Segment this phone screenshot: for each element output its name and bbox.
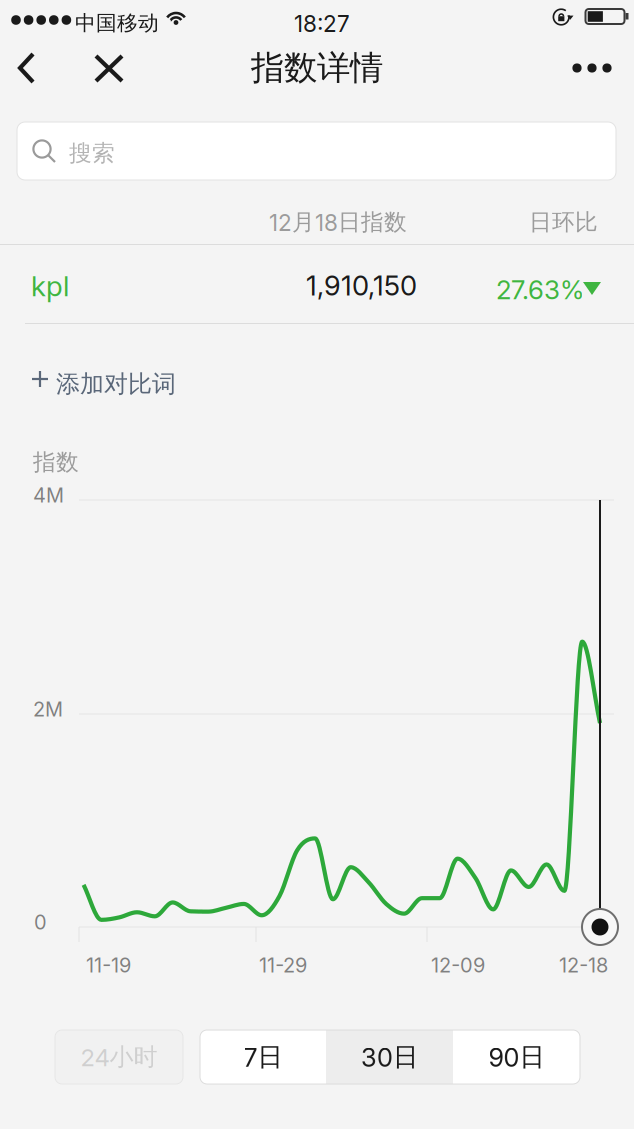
button[interactable]: 搜索 (17, 122, 616, 180)
staticText: 1,910,150 (306, 269, 417, 302)
button[interactable]: 24小时 (55, 1030, 183, 1084)
staticText: 18:27 (294, 10, 350, 37)
staticText: 12月18日指数 (269, 208, 407, 237)
staticText: 添加对比词 (56, 369, 176, 399)
button[interactable]: More (566, 40, 618, 96)
button[interactable]: 添加对比词 (0, 350, 200, 408)
staticText: 90日 (488, 1041, 544, 1073)
button[interactable]: 90日 (453, 1030, 580, 1084)
button[interactable]: kpl (0, 244, 634, 324)
staticText: kpl (31, 269, 69, 303)
staticText: 4M (33, 483, 64, 507)
staticText: 11-19 (86, 953, 131, 977)
button[interactable]: Back (0, 40, 52, 96)
staticText: 指数 (33, 448, 79, 477)
button[interactable]: Close (84, 40, 136, 96)
staticText: 中国移动 (75, 10, 159, 36)
staticText: 24小时 (80, 1042, 157, 1072)
staticText: 7日 (243, 1041, 282, 1073)
staticText: 搜索 (69, 139, 115, 168)
staticText: 0 (34, 910, 47, 934)
staticText: 11-29 (259, 953, 307, 977)
staticText: 2M (33, 697, 63, 721)
staticText: 指数详情 (251, 47, 383, 89)
staticText: 27.63% (496, 274, 584, 305)
staticText: 12-18 (559, 953, 608, 977)
staticText: 30日 (361, 1041, 418, 1073)
button[interactable]: 30日 (326, 1030, 453, 1084)
staticText: 12-09 (431, 953, 485, 977)
staticText: 日环比 (529, 208, 598, 237)
button[interactable]: 7日 (200, 1030, 326, 1084)
